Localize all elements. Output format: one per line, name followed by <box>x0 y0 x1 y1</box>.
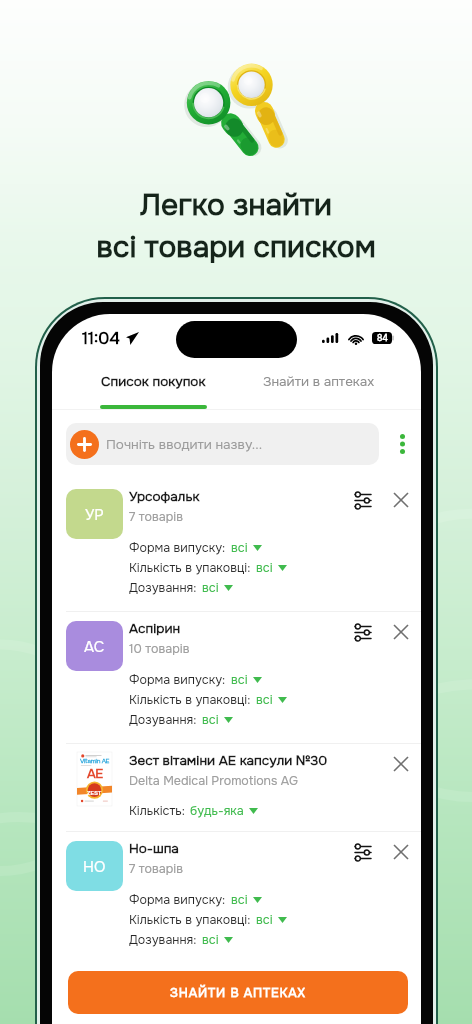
staticText: будь-яка <box>190 803 244 819</box>
button[interactable]: Знайти в аптеках <box>236 366 402 410</box>
staticText: всі <box>231 892 248 908</box>
staticText: всі <box>202 932 219 948</box>
staticText: Форма випуску: <box>129 892 226 908</box>
staticText: УР <box>85 505 104 524</box>
button[interactable]: Vitamin AE <box>52 753 421 831</box>
staticText: всі <box>256 912 273 928</box>
staticText: ZEST <box>87 790 102 797</box>
button[interactable]: УР <box>52 489 421 599</box>
staticText: Почніть вводити назву... <box>106 436 263 453</box>
staticText: 11:04 <box>82 328 120 349</box>
staticText: Кількість в упаковці: <box>129 912 251 928</box>
button[interactable]: Почніть вводити назву... <box>66 423 379 465</box>
staticText: всі <box>202 712 219 728</box>
button[interactable]: Filter <box>355 845 371 860</box>
staticText: Кількість в упаковці: <box>129 692 251 708</box>
staticText: 10 товарів <box>129 641 190 657</box>
staticText: Зест вітаміни АЕ капсули №30 <box>129 752 328 769</box>
staticText: Кількість: <box>129 803 185 819</box>
staticText: 7 товарів <box>129 861 183 877</box>
staticText: всі <box>231 540 248 556</box>
staticText: Дозування: <box>129 580 197 596</box>
button[interactable]: Список покупок <box>71 366 236 410</box>
staticText: всі товари списком <box>96 228 376 266</box>
staticText: 7 товарів <box>129 509 183 525</box>
staticText: Форма випуску: <box>129 540 226 556</box>
staticText: Delta Medical Promotions AG <box>129 773 298 789</box>
staticText: Кількість в упаковці: <box>129 560 251 576</box>
staticText: Аспірин <box>129 620 181 637</box>
button[interactable]: Remove <box>394 845 408 859</box>
staticText: всі <box>202 580 219 596</box>
staticText: всі <box>231 672 248 688</box>
staticText: Знайти в аптеках <box>263 373 375 390</box>
button[interactable]: Remove <box>394 493 408 507</box>
staticText: Форма випуску: <box>129 672 226 688</box>
staticText: Список покупок <box>101 373 206 390</box>
button[interactable]: Remove <box>394 757 408 771</box>
button[interactable]: Remove <box>394 625 408 639</box>
staticText: Урсофальк <box>129 488 200 505</box>
button[interactable]: ЗНАЙТИ В АПТЕКАХ <box>68 971 408 1014</box>
staticText: Легко знайти <box>140 186 332 224</box>
button[interactable]: Filter <box>355 625 371 640</box>
button[interactable]: НО <box>52 841 421 951</box>
staticText: 84 <box>377 333 388 344</box>
staticText: ЗНАЙТИ В АПТЕКАХ <box>170 985 306 1001</box>
staticText: Дозування: <box>129 712 197 728</box>
staticText: Дозування: <box>129 932 197 948</box>
staticText: AE <box>87 765 103 782</box>
staticText: Vitamin AE <box>80 757 110 765</box>
button[interactable]: АС <box>52 621 421 731</box>
staticText: всі <box>256 692 273 708</box>
staticText: АС <box>84 637 105 656</box>
staticText: НО <box>83 857 106 876</box>
button[interactable]: Filter <box>355 493 371 508</box>
staticText: всі <box>256 560 273 576</box>
button[interactable]: More options <box>388 423 416 465</box>
staticText: Но-шпа <box>129 840 179 857</box>
